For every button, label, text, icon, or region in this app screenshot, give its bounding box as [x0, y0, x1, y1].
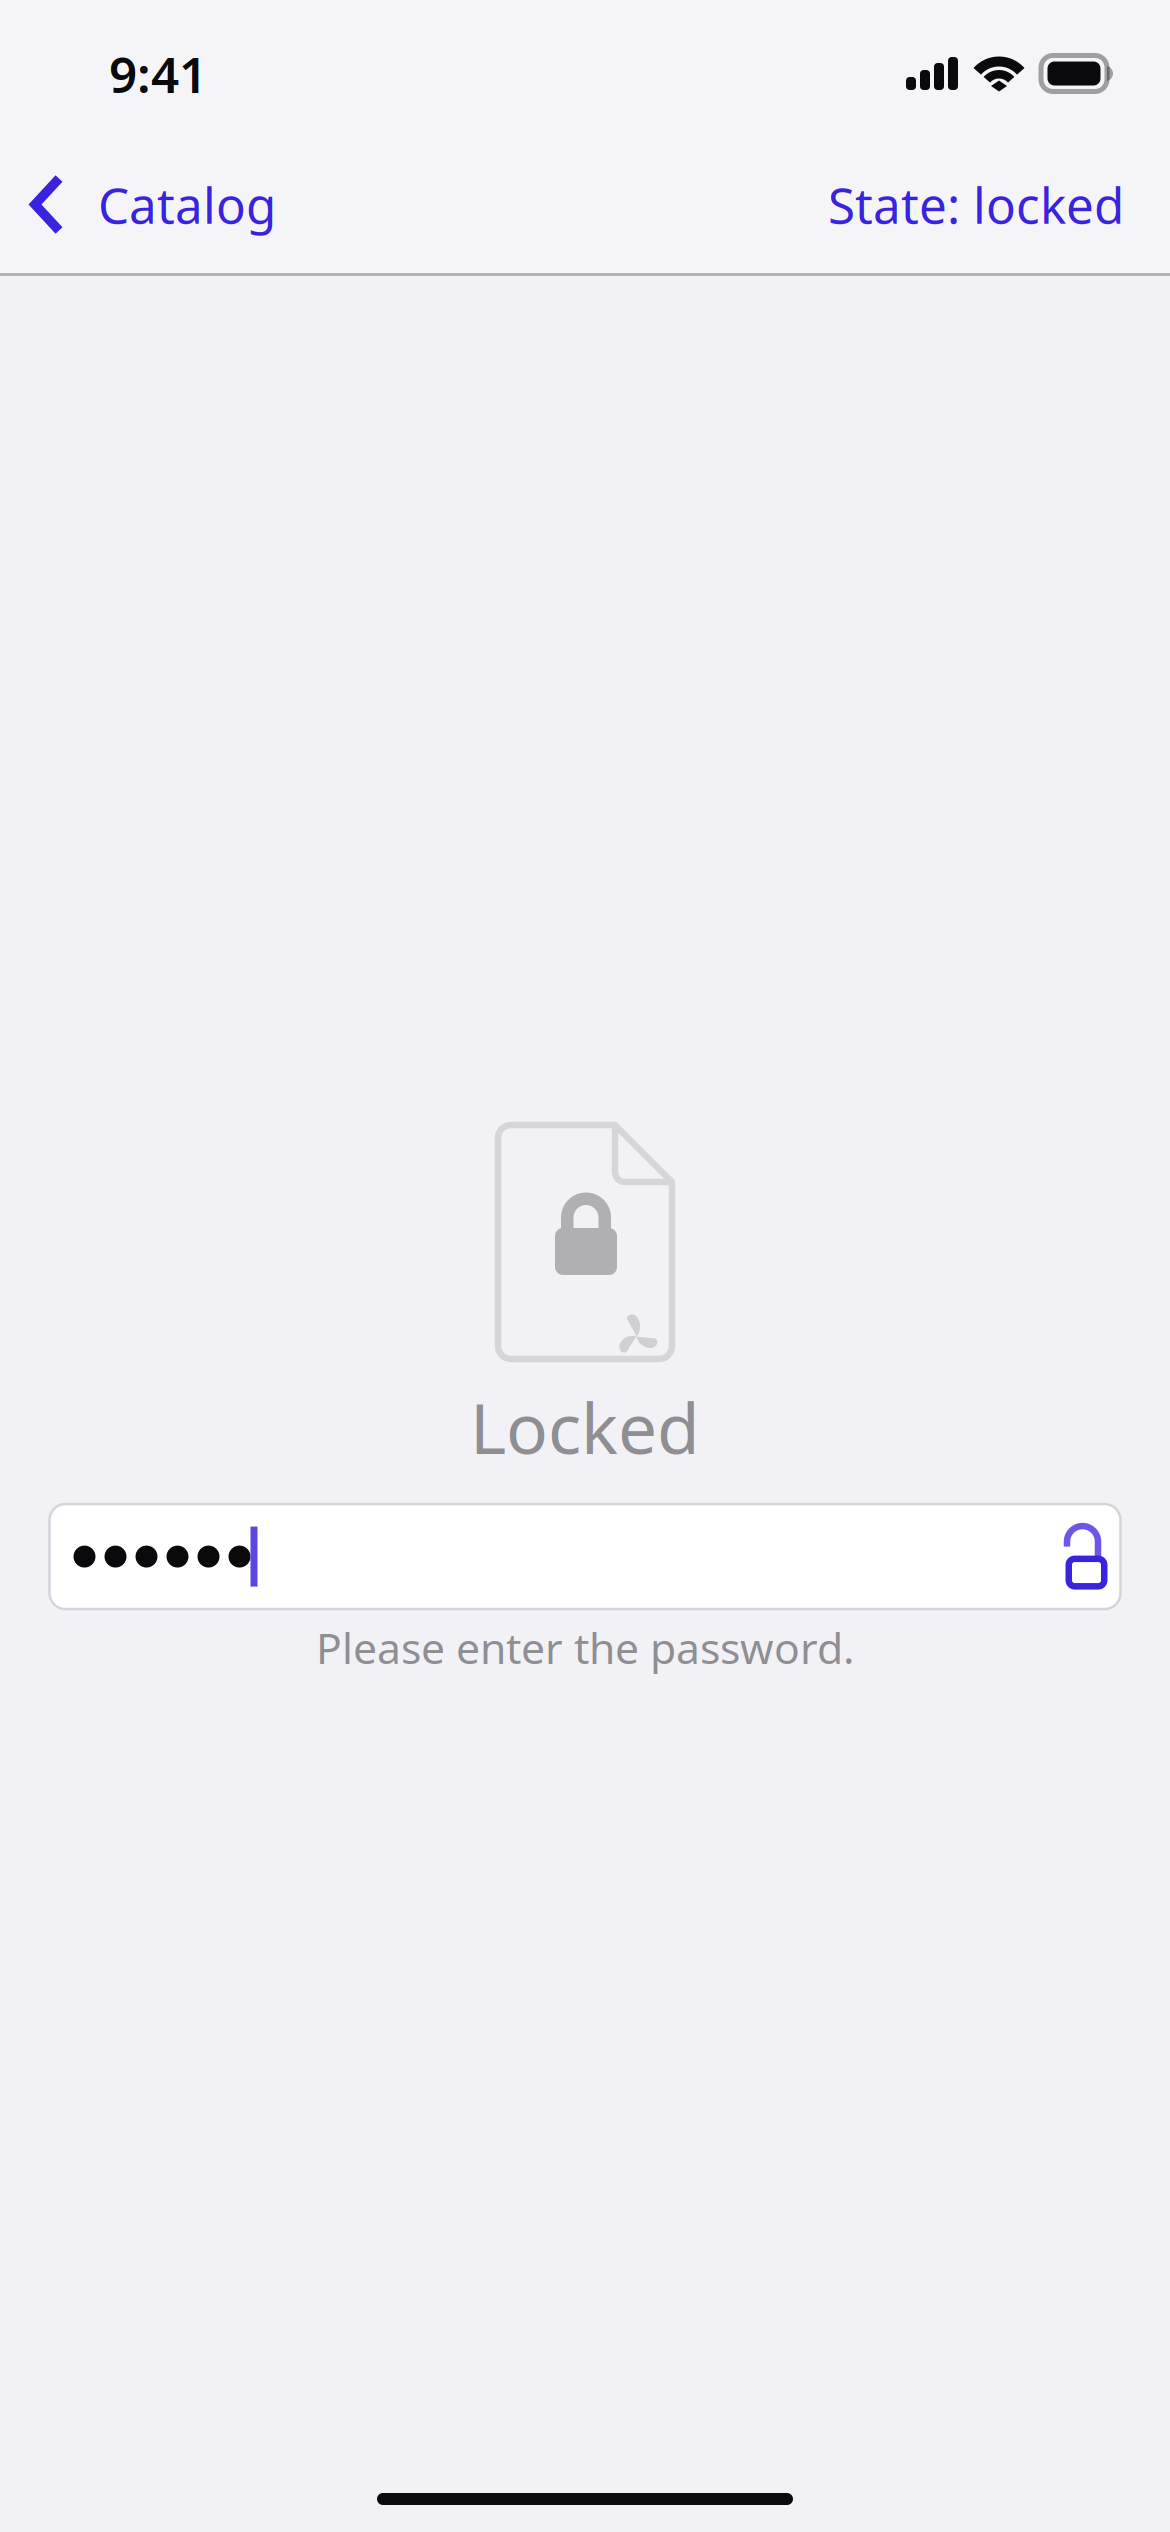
- button[interactable]: Unlock document: [1065, 1522, 1109, 1592]
- button[interactable]: State: locked: [802, 138, 1170, 271]
- staticText: Please enter the password.: [316, 1619, 854, 1676]
- button[interactable]: Password: [49, 1504, 1120, 1609]
- staticText: Locked: [470, 1381, 700, 1473]
- staticText: Catalog: [98, 172, 276, 237]
- staticText: 9:41: [109, 41, 207, 106]
- staticText: State: locked: [828, 172, 1124, 237]
- button[interactable]: Catalog: [0, 138, 302, 271]
